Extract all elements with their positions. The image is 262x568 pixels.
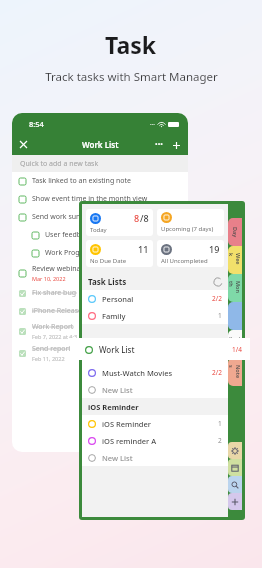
staticText: Fix share bug — [32, 288, 77, 298]
staticText: All Uncompleted — [161, 257, 208, 265]
staticText: 19 — [209, 243, 220, 255]
staticText: Week — [228, 253, 242, 267]
button[interactable]: 19 — [157, 240, 224, 267]
staticText: New List — [102, 453, 133, 463]
staticText: 2/2 — [212, 294, 222, 303]
staticText: Work List — [82, 139, 119, 150]
staticText: Family — [102, 311, 126, 321]
staticText: iOS Reminder — [88, 402, 139, 412]
staticText: iPhone Release — [32, 306, 82, 316]
staticText: Send work sum — [32, 212, 83, 222]
button[interactable]: iOS reminder A — [88, 432, 222, 449]
staticText: 2 — [218, 436, 222, 445]
staticText: iOS Reminder — [102, 419, 151, 429]
button[interactable]: Settings — [228, 442, 242, 459]
staticText: Task — [105, 29, 157, 60]
staticText: ••• — [155, 140, 163, 150]
staticText: To-Do List — [102, 351, 138, 361]
button[interactable]: Must-Watch Movies — [88, 364, 222, 381]
button[interactable]: Show event time in the month view — [19, 190, 184, 208]
staticText: 1 — [218, 311, 222, 320]
staticText: Show event time in the month view — [32, 194, 148, 204]
staticText: Mar 10, 2022 — [32, 275, 66, 282]
button[interactable]: Work Progr — [32, 244, 184, 262]
staticText: Feb 11, 2022 — [32, 355, 65, 362]
staticText: Send reports — [32, 344, 75, 354]
button[interactable]: Close — [12, 134, 188, 155]
staticText: 8:54 — [29, 119, 44, 129]
button[interactable]: Send reports — [19, 342, 184, 364]
staticText: ··· — [150, 120, 155, 128]
staticText: 2/2 — [212, 368, 222, 377]
button[interactable]: Notes — [228, 358, 242, 386]
staticText: Work Report — [32, 322, 74, 332]
staticText: Quick to add a new task — [20, 159, 99, 169]
button[interactable]: Upcoming (7 days) — [157, 209, 224, 236]
button[interactable]: Week — [228, 246, 242, 274]
button[interactable]: Calendar — [228, 459, 242, 476]
button[interactable]: Month — [228, 274, 242, 302]
staticText: /8 — [140, 212, 149, 224]
staticText: Track tasks with Smart Manager — [45, 69, 218, 85]
staticText: Must-Watch Movies — [102, 368, 173, 378]
button[interactable]: iOS Reminder — [88, 415, 222, 432]
button[interactable]: Personal — [88, 290, 222, 307]
staticText: Tasks — [228, 337, 242, 351]
button[interactable]: New List — [88, 449, 222, 466]
staticText: Month — [228, 281, 242, 295]
button[interactable]: 11 — [86, 240, 153, 267]
button[interactable]: User feedb — [32, 226, 184, 244]
button[interactable]: Send work sum — [19, 208, 184, 226]
button[interactable]: Search — [228, 476, 242, 493]
staticText: Task linked to an existing note — [32, 176, 132, 186]
staticText: Notes — [228, 365, 242, 379]
button[interactable]: Day — [228, 218, 242, 246]
button[interactable]: Task linked to an existing note — [19, 172, 184, 190]
staticText: Work List — [99, 344, 135, 355]
staticText: 8 — [134, 212, 140, 224]
staticText: Today — [90, 226, 107, 234]
button[interactable]: Work Report — [19, 320, 184, 342]
staticText: Work Progr — [45, 248, 83, 258]
staticText: Upcoming (7 days) — [161, 225, 214, 233]
other: Add task — [172, 141, 181, 150]
button[interactable]: iPhone Release — [19, 302, 184, 320]
button[interactable]: Work List — [70, 338, 250, 360]
button[interactable]: 8 — [86, 209, 153, 236]
button[interactable]: Review webina — [19, 262, 184, 284]
button[interactable] — [228, 302, 242, 330]
button[interactable]: New List — [88, 381, 222, 398]
button[interactable]: Task Lists — [88, 273, 222, 290]
other: Close — [19, 140, 28, 149]
staticText: 1 — [218, 419, 222, 428]
staticText: 1/4 — [232, 345, 242, 354]
staticText: Review webina — [32, 264, 81, 274]
staticText: User feedb — [45, 230, 82, 240]
staticText: iOS reminder A — [102, 436, 157, 446]
button[interactable]: To-Do List — [88, 347, 222, 364]
staticText: Day — [232, 227, 239, 238]
staticText: New List — [102, 385, 133, 395]
other: Sync — [214, 278, 222, 286]
button[interactable]: Tasks — [228, 330, 242, 358]
staticText: No Due Date — [90, 257, 127, 265]
staticText: 11 — [138, 243, 149, 255]
button[interactable]: Fix share bug — [19, 284, 184, 302]
button[interactable]: Quick to add a new task — [12, 155, 188, 172]
staticText: Feb 7, 2022 at 4:3 — [32, 333, 78, 340]
staticText: Task Lists — [88, 276, 127, 287]
staticText: Personal — [102, 294, 134, 304]
button[interactable]: Family — [88, 307, 222, 324]
button[interactable]: Add — [228, 493, 242, 510]
